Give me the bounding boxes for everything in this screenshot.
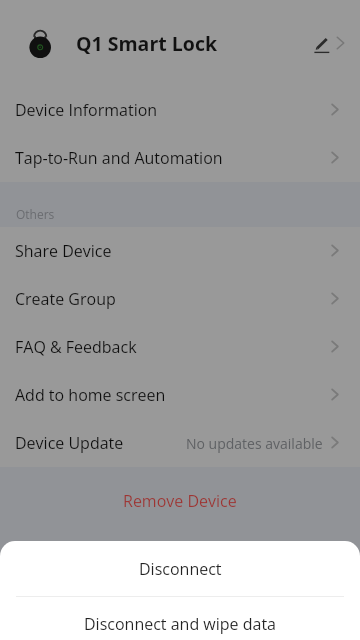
button[interactable]: Q1 Smart Lock	[0, 0, 360, 86]
button[interactable]: Create Group	[0, 275, 360, 323]
staticText: Add to home screen	[15, 384, 166, 406]
staticText: Others	[16, 206, 55, 222]
button[interactable]: FAQ & Feedback	[0, 323, 360, 371]
button[interactable]: Device Update	[0, 419, 360, 467]
button[interactable]: Disconnect and wipe data	[0, 597, 360, 640]
other: Edit device name	[311, 35, 333, 57]
button[interactable]: Disconnect	[0, 541, 360, 596]
staticText: Remove Device	[123, 490, 237, 512]
staticText: Share Device	[15, 240, 112, 262]
staticText: Q1 Smart Lock	[76, 30, 217, 57]
staticText: Device Update	[15, 432, 124, 454]
staticText: No updates available	[186, 434, 323, 453]
staticText: Disconnect	[139, 558, 222, 580]
staticText: Create Group	[15, 288, 116, 310]
staticText: FAQ & Feedback	[15, 336, 137, 358]
staticText: Tap-to-Run and Automation	[15, 147, 223, 169]
button[interactable]: Device Information	[0, 86, 360, 134]
staticText: Disconnect and wipe data	[84, 613, 276, 635]
button[interactable]: Tap-to-Run and Automation	[0, 134, 360, 182]
button[interactable]: Add to home screen	[0, 371, 360, 419]
staticText: Device Information	[15, 99, 158, 121]
button[interactable]: Remove Device	[0, 477, 360, 525]
button[interactable]: Share Device	[0, 227, 360, 275]
